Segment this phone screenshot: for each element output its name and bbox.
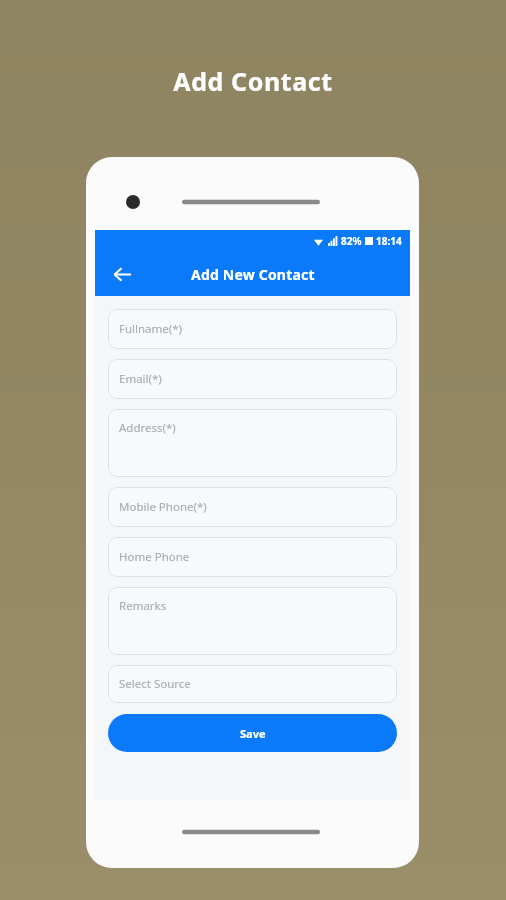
button[interactable]: Save [108,714,397,752]
staticText: Save [240,726,266,741]
button[interactable]: Mobile Phone(*) [108,487,397,527]
staticText: Add New Contact [191,265,315,284]
staticText: 18:14 [376,234,402,248]
staticText: Email(*) [119,371,162,387]
button[interactable]: Home Phone [108,537,397,577]
staticText: Remarks [119,598,167,614]
staticText: Address(*) [119,420,176,436]
button[interactable]: Fullname(*) [108,309,397,349]
button[interactable]: Back [103,255,141,293]
button[interactable]: Select Source [108,665,397,703]
staticText: Select Source [119,676,191,692]
staticText: Fullname(*) [119,321,183,337]
staticText: Mobile Phone(*) [119,499,207,515]
staticText: Add Contact [0,64,506,98]
staticText: Home Phone [119,549,190,565]
button[interactable]: Address(*) [108,409,397,477]
button[interactable]: Remarks [108,587,397,655]
button[interactable]: Email(*) [108,359,397,399]
staticText: 82% [341,234,362,248]
